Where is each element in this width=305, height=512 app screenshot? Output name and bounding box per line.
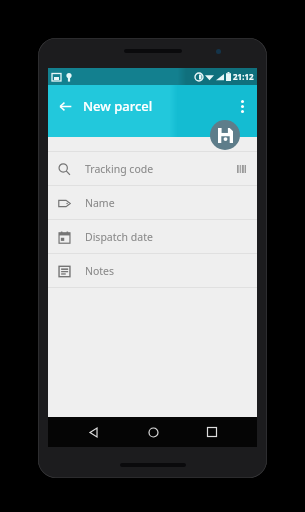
- button[interactable]: Navigate up: [52, 93, 78, 119]
- staticText: Tracking code: [85, 162, 154, 176]
- button[interactable]: Home: [138, 417, 168, 447]
- button[interactable]: More options: [230, 94, 254, 118]
- button[interactable]: Dispatch date: [48, 220, 257, 253]
- staticText: 21:12: [233, 71, 254, 82]
- button[interactable]: Save parcel: [210, 120, 240, 150]
- staticText: Dispatch date: [85, 230, 153, 244]
- button[interactable]: Scan barcode: [233, 161, 249, 177]
- staticText: Notes: [85, 264, 115, 278]
- button[interactable]: Back: [78, 417, 108, 447]
- button[interactable]: Name: [48, 186, 257, 219]
- staticText: New parcel: [83, 97, 153, 115]
- button[interactable]: Notes: [48, 254, 257, 287]
- button[interactable]: Recent apps: [197, 417, 227, 447]
- button[interactable]: Tracking code: [48, 152, 257, 185]
- staticText: Name: [85, 196, 115, 210]
